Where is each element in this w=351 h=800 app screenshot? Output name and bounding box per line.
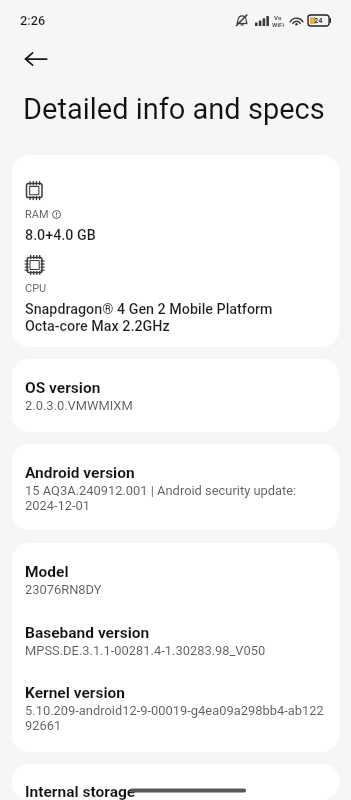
button[interactable]: Back <box>4 44 47 87</box>
staticText: 5.10.209-android12-9-00019-g4ea09a298bb4… <box>25 703 324 733</box>
staticText: Model <box>25 563 69 581</box>
staticText: 24 <box>314 16 323 25</box>
staticText: 23076RN8DY <box>25 582 102 597</box>
staticText: Vo <box>274 14 282 21</box>
staticText: OS version <box>25 379 101 397</box>
staticText: 2.0.3.0.VMWMIXM <box>25 398 133 413</box>
staticText: CPU <box>25 282 47 295</box>
staticText: RAM <box>25 208 49 221</box>
staticText: Android version <box>25 464 135 482</box>
staticText: Snapdragon® 4 Gen 2 Mobile Platform Octa… <box>25 301 273 335</box>
staticText: Baseband version <box>25 624 150 642</box>
staticText: 2:26 <box>20 13 46 28</box>
staticText: WiFi <box>272 21 285 28</box>
staticText: 8.0+4.0 GB <box>25 227 96 244</box>
staticText: MPSS.DE.3.1.1-00281.4-1.30283.98_V050 <box>25 643 266 658</box>
staticText: Detailed info and specs <box>23 92 325 126</box>
staticText: 15 AQ3A.240912.001 | Android security up… <box>25 483 297 513</box>
staticText: Kernel version <box>25 684 126 702</box>
staticText: Internal storage <box>25 783 136 800</box>
